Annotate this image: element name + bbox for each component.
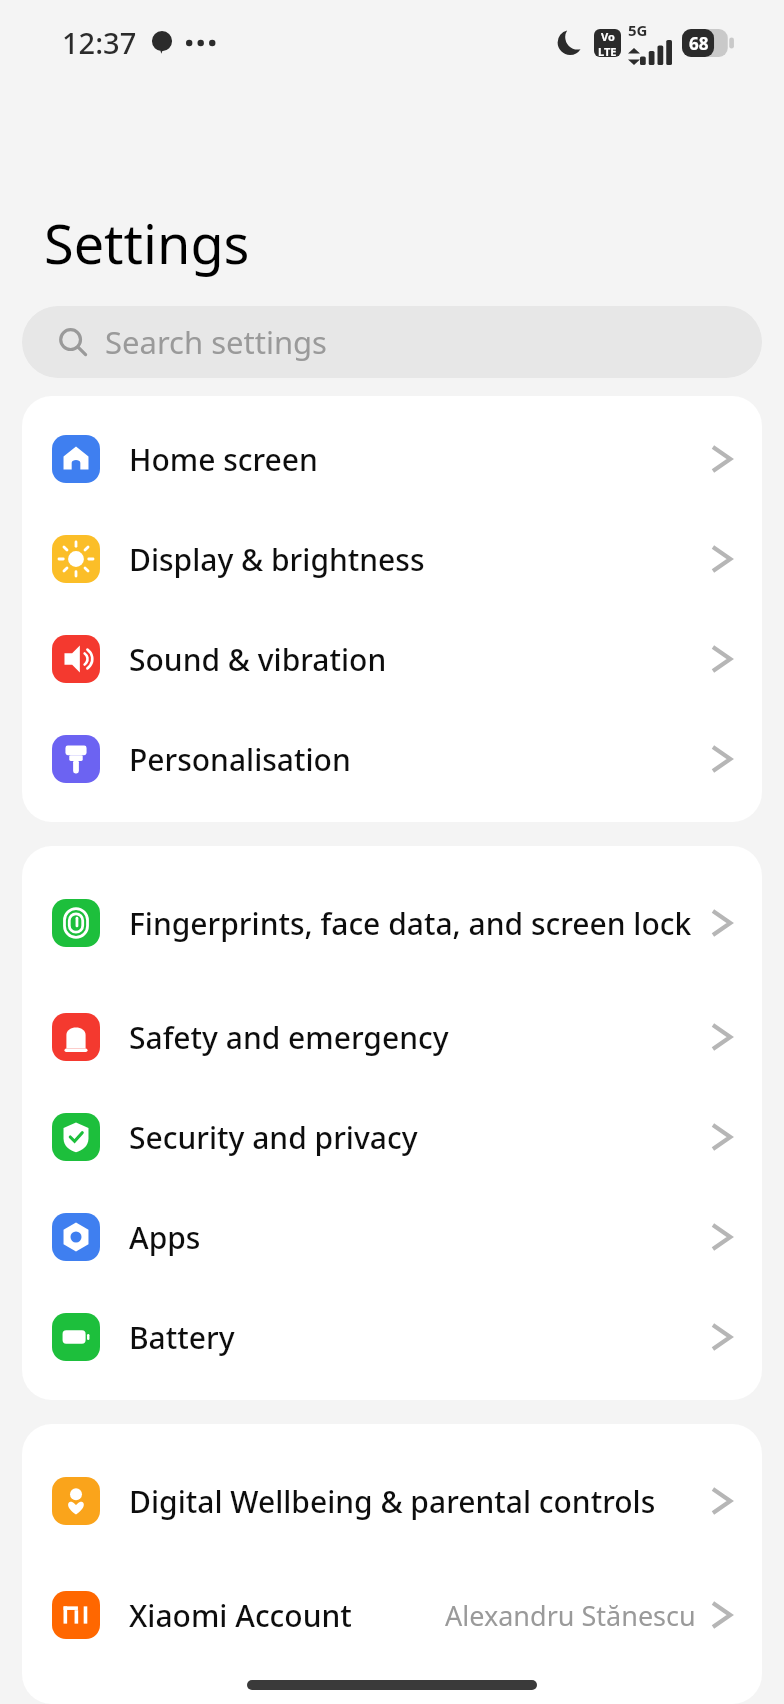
staticText: LTE [598,44,617,57]
staticText: Vo [601,29,615,44]
staticText: 5G [628,20,648,40]
button[interactable]: Search settings [22,306,762,378]
staticText: Xiaomi Account [129,1595,445,1636]
staticText: Security and privacy [129,1117,710,1158]
staticText: 68 [689,32,709,55]
button[interactable]: Digital Wellbeing & parental controls [22,1437,762,1565]
staticText: 12:37 [62,23,137,62]
staticText: Sound & vibration [129,639,710,680]
button[interactable]: Sound & vibration [22,609,762,709]
button[interactable]: Display & brightness [22,509,762,609]
staticText: Digital Wellbeing & parental controls [129,1481,710,1522]
button[interactable]: Battery [22,1287,762,1387]
staticText: Personalisation [129,739,710,780]
staticText: Alexandru Stănescu [445,1597,696,1634]
staticText: Search settings [105,321,327,363]
button[interactable]: Safety and emergency [22,987,762,1087]
staticText: Battery [129,1317,710,1358]
button[interactable]: Fingerprints, face data, and screen lock [22,859,762,987]
staticText: Fingerprints, face data, and screen lock [129,903,710,944]
staticText: Home screen [129,439,710,480]
button[interactable]: Xiaomi Account [22,1565,762,1665]
staticText: Apps [129,1217,710,1258]
staticText: Settings [44,206,250,280]
button[interactable]: Apps [22,1187,762,1287]
staticText: Safety and emergency [129,1017,710,1058]
staticText: Display & brightness [129,539,710,580]
button[interactable]: Security and privacy [22,1087,762,1187]
button[interactable]: Home screen [22,409,762,509]
button[interactable]: Personalisation [22,709,762,809]
